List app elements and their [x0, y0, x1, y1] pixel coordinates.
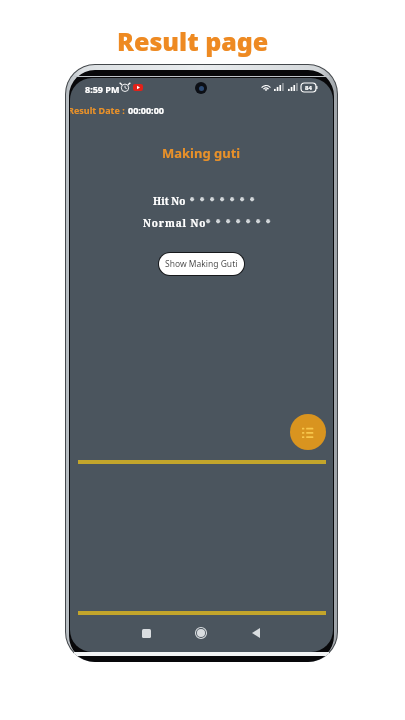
staticText: Making guti: [162, 144, 241, 162]
button[interactable]: Show list: [290, 414, 326, 450]
staticText: Hit No: [153, 194, 186, 208]
staticText: Normal No: [143, 216, 207, 230]
staticText: Result Date :: [70, 104, 128, 116]
button[interactable]: Recent apps: [126, 613, 166, 652]
staticText: Result page: [117, 24, 269, 58]
staticText: Show Making Guti: [165, 258, 238, 270]
button[interactable]: Show Making Guti: [159, 253, 244, 275]
staticText: 8:59 PM: [85, 83, 120, 95]
button[interactable]: Back: [236, 613, 276, 652]
staticText: 00:00:00: [128, 104, 164, 116]
staticText: 84: [305, 84, 312, 92]
button[interactable]: Home: [181, 613, 221, 652]
